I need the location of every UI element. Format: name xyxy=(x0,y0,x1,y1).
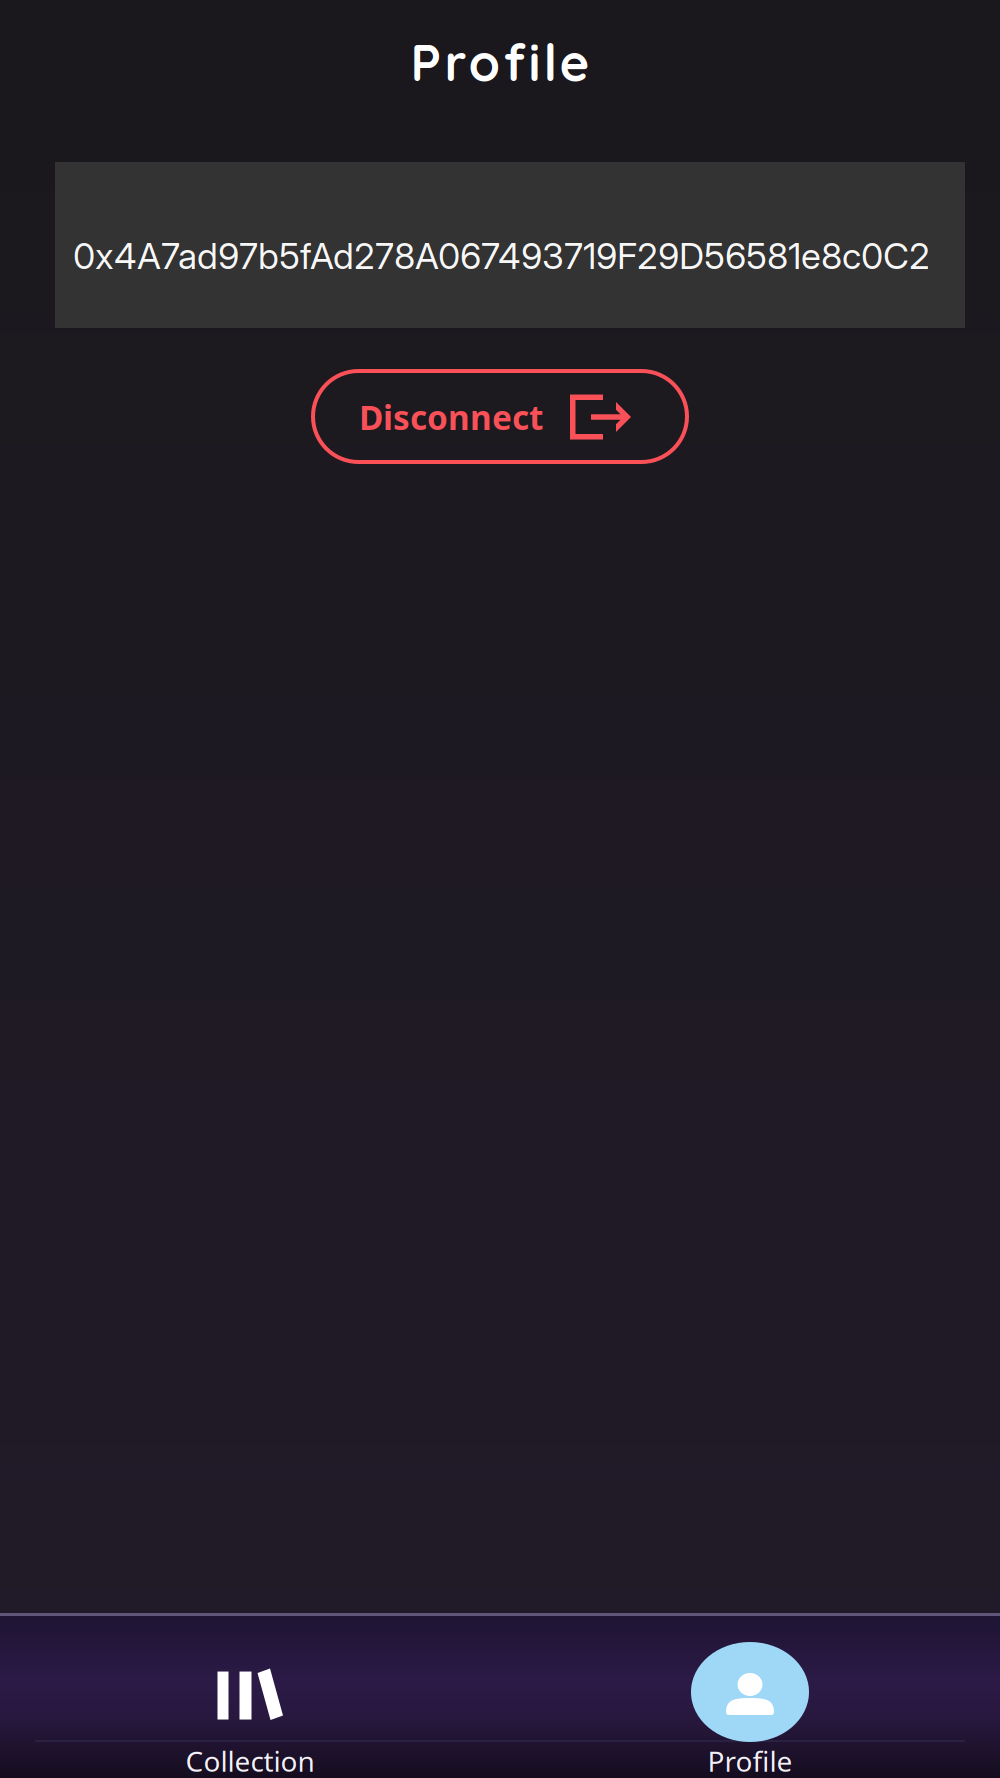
staticText: Profile xyxy=(410,30,589,94)
button[interactable]: Collection xyxy=(0,1616,500,1778)
staticText: 0x4A7ad97b5fAd278A067493719F29D56581e8c0… xyxy=(73,234,930,278)
button[interactable]: Profile xyxy=(500,1616,1000,1778)
button[interactable]: Disconnect xyxy=(313,371,687,462)
staticText: Profile xyxy=(707,1742,792,1778)
staticText: Collection xyxy=(185,1742,314,1778)
staticText: Disconnect xyxy=(359,395,543,439)
